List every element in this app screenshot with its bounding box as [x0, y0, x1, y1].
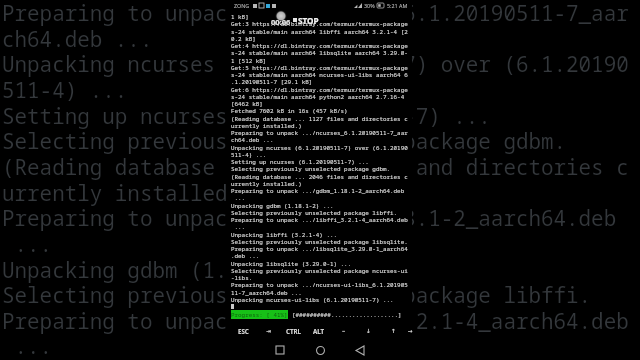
staticText: urrently installed.): [2, 179, 253, 207]
staticText: ...: [2, 332, 53, 360]
staticText: Get:5 https://dl.bintray.com/termux/term…: [231, 64, 408, 72]
staticText: Preparing to unpack .../libffi_3.2.1-4_a…: [2, 307, 629, 335]
staticText: ...: [231, 223, 246, 231]
staticText: [##########...................]: [292, 311, 402, 319]
button[interactable]: CTRL: [281, 324, 306, 338]
staticText: .deb ...: [231, 252, 260, 260]
button[interactable]: ⇥: [256, 324, 281, 338]
staticText: Get:4 https://dl.bintray.com/termux/term…: [231, 42, 408, 50]
staticText: Preparing to unpack .../gdbm_1.18.1-2_aa…: [231, 187, 405, 195]
staticText: Setting up ncurses (6.1.20190511-7) ...: [231, 158, 369, 166]
staticText: (Reading database ... 1127 files and dir…: [231, 115, 408, 123]
staticText: s-24 stable/main aarch64 libsqlite aarch…: [231, 49, 408, 57]
staticText: Progress: [ 41%]: [231, 311, 288, 319]
staticText: s-24 stable/main aarch64 libffi aarch64 …: [231, 28, 408, 36]
staticText: 1 kB]: [231, 13, 249, 21]
staticText: Selecting previously unselected package …: [231, 165, 391, 173]
staticText: ↓: [366, 328, 371, 335]
button[interactable]: Back: [352, 342, 368, 358]
staticText: 5:21 AM: [387, 2, 408, 9]
staticText: 511-4) ...: [231, 151, 267, 159]
staticText: Selecting previously unselected package …: [2, 127, 567, 155]
staticText: ch64.deb ...: [2, 25, 153, 53]
staticText: 0.2 kB]: [231, 35, 256, 43]
staticText: Unpacking libsqlite (3.29.0-1) ...: [231, 260, 352, 268]
staticText: Preparing to unpack .../ncurses_6.1.2019…: [231, 129, 408, 137]
staticText: Preparing to unpack .../libsqlite_3.29.0…: [231, 245, 408, 253]
staticText: 511-4) ...: [2, 76, 128, 104]
staticText: Get:3 https://dl.bintray.com/termux/term…: [231, 20, 408, 28]
staticText: Preparing to unpack .../ncurses_6.1.2019…: [2, 0, 629, 27]
staticText: 00:06: [271, 17, 291, 27]
staticText: 1 [512 kB]: [231, 57, 267, 65]
staticText: 11-7_aarch64.deb ...: [231, 289, 302, 297]
button[interactable]: Stop recording: [293, 15, 319, 25]
staticText: Setting up ncurses (6.1.20190511-7) ...: [2, 102, 491, 130]
staticText: 30%: [364, 2, 375, 9]
staticText: Unpacking ncurses (6.1.20190511-7) over …: [2, 50, 629, 78]
staticText: Selecting previously unselected package …: [231, 238, 408, 246]
staticText: ESC: [238, 327, 249, 335]
button[interactable]: ↓: [356, 324, 381, 338]
button[interactable]: ↑: [381, 324, 406, 338]
staticText: Preparing to unpack .../libffi_3.2.1-4_a…: [231, 216, 408, 224]
staticText: STOP: [298, 15, 319, 25]
staticText: -libs.: [231, 274, 253, 282]
staticText: ch64.deb ...: [231, 136, 274, 144]
button[interactable]: −: [331, 324, 356, 338]
button[interactable]: ALT: [306, 324, 331, 338]
button[interactable]: →: [406, 324, 415, 338]
staticText: Unpacking libffi (3.2.1-4) ...: [231, 231, 338, 239]
staticText: ⇥: [266, 328, 271, 335]
staticText: (Reading database ... 2046 files and dir…: [231, 173, 408, 181]
staticText: ↑: [391, 328, 396, 335]
staticText: Selecting previously unselected package …: [2, 281, 592, 309]
staticText: urrently installed.): [231, 180, 302, 188]
staticText: s-24 stable/main aarch64 python2 aarch64…: [231, 93, 405, 101]
staticText: (Reading database ... 2046 files and dir…: [2, 153, 629, 181]
staticText: urrently installed.): [231, 122, 302, 130]
staticText: ...: [2, 230, 53, 258]
staticText: Selecting previously unselected package …: [231, 209, 398, 217]
staticText: Selecting previously unselected package …: [231, 267, 408, 275]
staticText: −: [342, 327, 346, 335]
button[interactable]: ESC: [231, 324, 256, 338]
staticText: s-24 stable/main aarch64 ncurses-ui-libs…: [231, 71, 408, 79]
staticText: Get:6 https://dl.bintray.com/termux/term…: [231, 86, 408, 94]
staticText: Unpacking ncurses (6.1.20190511-7) over …: [231, 144, 408, 152]
staticText: Unpacking gdbm (1.18.1-2) ...: [2, 256, 366, 284]
staticText: →: [408, 328, 413, 335]
button[interactable]: Home: [312, 342, 328, 358]
staticText: Preparing to unpack .../ncurses-ui-libs_…: [231, 281, 408, 289]
staticText: ZONG: [234, 2, 250, 9]
staticText: Preparing to unpack .../gdbm_1.18.1-2_aa…: [2, 204, 617, 232]
staticText: Fetched 7602 kB in 16s (457 kB/s): [231, 107, 348, 115]
staticText: CTRL: [286, 327, 302, 335]
staticText: ALT: [313, 327, 325, 335]
staticText: Unpacking gdbm (1.18.1-2) ...: [231, 202, 334, 210]
staticText: .1.20190511-7 [29.1 kB]: [231, 78, 313, 86]
staticText: ...: [231, 194, 246, 202]
staticText: [6462 kB]: [231, 100, 263, 108]
staticText: Unpacking ncurses-ui-libs (6.1.20190511-…: [231, 296, 394, 304]
button[interactable]: Recents: [272, 342, 288, 358]
